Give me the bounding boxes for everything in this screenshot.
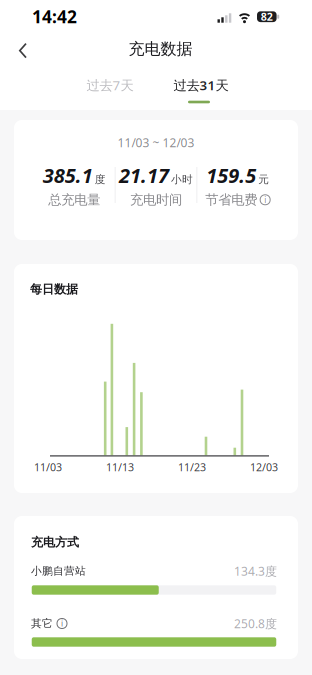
staticText: i (264, 194, 266, 205)
staticText: 134.3度 (234, 563, 277, 579)
staticText: 14:42 (32, 5, 77, 28)
staticText: 充电数据 (128, 39, 192, 59)
staticText: 159.5 (206, 162, 256, 189)
staticText: 385.1 (43, 162, 93, 189)
staticText: 11/13 (106, 460, 134, 474)
staticText: 12/03 (250, 460, 278, 474)
button[interactable]: 过去31天 (159, 72, 243, 98)
staticText: 度 (95, 173, 106, 186)
button[interactable] (0, 36, 44, 66)
staticText: 21.17 (119, 162, 169, 189)
button[interactable]: 过去7天 (70, 72, 150, 98)
staticText: 过去7天 (86, 76, 133, 94)
staticText: 总充电量 (48, 192, 100, 208)
staticText: 小鹏自营站 (31, 564, 86, 577)
staticText: 11/03 (34, 460, 62, 474)
staticText: 节省电费 (205, 192, 257, 208)
staticText: 充电方式 (31, 535, 79, 550)
staticText: 其它 (31, 617, 53, 630)
staticText: 82 (261, 10, 273, 24)
staticText: 每日数据 (30, 282, 78, 297)
button[interactable]: 其它 (31, 615, 277, 631)
staticText: 11/23 (178, 460, 206, 474)
staticText: 元 (258, 173, 269, 186)
staticText: 过去31天 (173, 76, 228, 94)
staticText: 11/03 ~ 12/03 (117, 134, 194, 150)
button[interactable]: 节省电费 (205, 192, 270, 208)
staticText: 充电时间 (130, 192, 182, 208)
staticText: 250.8度 (234, 615, 277, 631)
staticText: 小时 (171, 173, 193, 186)
staticText: i (61, 618, 63, 629)
